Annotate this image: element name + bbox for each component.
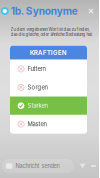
staticText: 1b. Synonyme bbox=[11, 5, 78, 17]
button[interactable]: Mästen bbox=[10, 115, 87, 133]
button[interactable]: Füttern bbox=[10, 60, 87, 78]
staticText: Stärken bbox=[27, 102, 47, 109]
button[interactable]: More bbox=[89, 163, 98, 169]
staticText: Nachricht senden bbox=[15, 163, 59, 169]
button[interactable]: Sorgen bbox=[10, 78, 87, 96]
staticText: Zu dem vorgebenen Wort ist das zu finden… bbox=[10, 27, 89, 32]
button[interactable]: Send bbox=[78, 161, 87, 171]
staticText: Sorgen bbox=[27, 84, 47, 91]
staticText: das die gleiche, oder ähnliche Bedeutung… bbox=[10, 32, 92, 37]
button[interactable]: Close bbox=[86, 6, 96, 16]
staticText: Füttern bbox=[27, 65, 45, 72]
staticText: KRÄFTIGEN bbox=[30, 49, 67, 56]
button[interactable]: Nachricht senden bbox=[2, 159, 74, 173]
button[interactable]: Stärken bbox=[10, 96, 87, 115]
staticText: Mästen bbox=[27, 121, 46, 128]
